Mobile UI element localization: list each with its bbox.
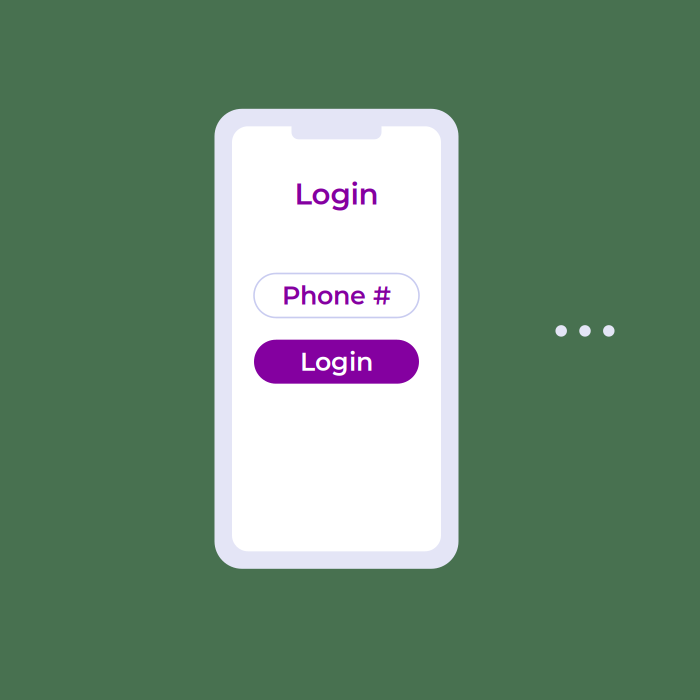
button[interactable]: Login	[254, 340, 419, 384]
staticText: Login	[300, 346, 373, 377]
staticText: Phone #	[282, 280, 391, 311]
staticText: Login	[294, 176, 378, 212]
button[interactable]: Phone #	[254, 273, 419, 317]
